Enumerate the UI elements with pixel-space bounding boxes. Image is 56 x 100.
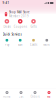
staticText: Scan xyxy=(18,43,23,46)
staticText: Coupons xyxy=(14,25,27,28)
button[interactable]: Me xyxy=(42,90,56,100)
staticText: Cart xyxy=(18,95,23,98)
staticText: Pay xyxy=(5,43,9,46)
button[interactable]: Deals xyxy=(0,18,13,29)
staticText: Cards xyxy=(30,43,37,46)
staticText: Me xyxy=(47,95,51,98)
button[interactable]: More xyxy=(40,38,53,47)
button[interactable]: Coupons xyxy=(14,18,27,29)
staticText: Orders xyxy=(30,95,39,98)
staticText: More xyxy=(43,43,50,46)
staticText: Quick Services xyxy=(3,33,22,36)
button[interactable]: Cards xyxy=(27,38,40,47)
button[interactable]: Orders xyxy=(28,90,42,100)
button[interactable]: Cart xyxy=(14,90,28,100)
button[interactable]: Shop Mall Store xyxy=(0,6,56,17)
staticText: Shop Mall Store xyxy=(9,10,30,14)
button[interactable]: Gifts xyxy=(27,18,40,29)
staticText: Gifts xyxy=(30,25,36,28)
button[interactable]: Home xyxy=(0,90,14,100)
staticText: Deals xyxy=(3,25,10,28)
staticText: Home xyxy=(3,95,11,98)
staticText: Member 2019 xyxy=(9,14,29,18)
staticText: 9:41 xyxy=(3,1,10,5)
button[interactable]: Scan xyxy=(14,38,27,47)
button[interactable]: Pay xyxy=(0,38,13,47)
